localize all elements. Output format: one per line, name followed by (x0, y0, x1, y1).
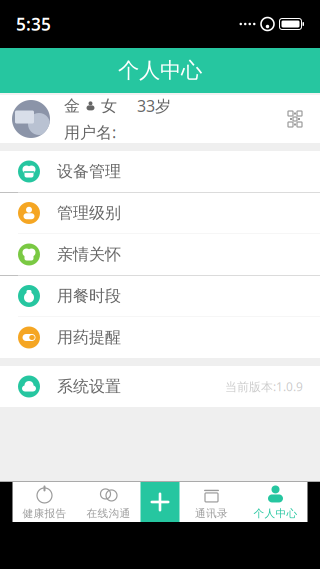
staticText: 金 (64, 96, 80, 116)
staticText: 管理级别 (57, 203, 121, 223)
staticText: 亲情关怀 (57, 245, 121, 264)
staticText: 5:35 (16, 12, 51, 35)
button[interactable]: 管理级别 (0, 192, 320, 234)
staticText: 设备管理 (57, 162, 121, 181)
staticText: 用户名: (64, 121, 116, 143)
button[interactable]: 用餐时段 (0, 275, 320, 317)
staticText: 用药提醒 (57, 328, 121, 347)
button[interactable]: 通讯录 (179, 482, 243, 522)
button[interactable]: 系统设置 (0, 366, 320, 407)
button[interactable]: 健康报告 (12, 482, 76, 522)
staticText: 当前版本:1.0.9 (225, 378, 303, 394)
button[interactable]: 金 (0, 95, 320, 143)
button[interactable]: 个人中心 (243, 482, 307, 522)
staticText: 通讯录 (195, 507, 228, 520)
staticText: 用餐时段 (57, 286, 121, 306)
button[interactable]: 用药提醒 (0, 317, 320, 358)
staticText: 女 (101, 96, 117, 116)
staticText: 个人中心 (118, 57, 202, 84)
button[interactable]: 设备管理 (0, 151, 320, 192)
button[interactable]: 在线沟通 (76, 482, 140, 522)
button[interactable]: 亲情关怀 (0, 234, 320, 275)
staticText: 个人中心 (253, 507, 297, 520)
staticText: 33岁 (137, 95, 171, 116)
staticText: 系统设置 (57, 377, 121, 396)
staticText: 在线沟通 (86, 507, 130, 520)
button[interactable]: 添加 (140, 482, 179, 522)
staticText: 健康报告 (22, 507, 66, 520)
